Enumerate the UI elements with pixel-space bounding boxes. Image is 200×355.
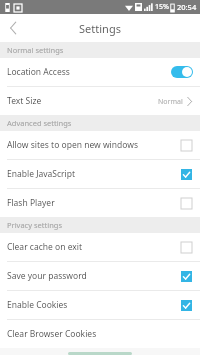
staticText: Settings (79, 21, 121, 36)
staticText: 15% (155, 2, 169, 12)
button[interactable]: Unchecked (179, 138, 193, 152)
staticText: Clear cache on exit (7, 241, 179, 253)
staticText: Text Size (7, 95, 158, 107)
staticText: Save your password (7, 270, 179, 282)
staticText: Privacy settings (7, 220, 62, 230)
staticText: Clear Browser Cookies (7, 328, 193, 340)
staticText: 20:54 (177, 2, 197, 12)
button[interactable]: Save your password (0, 262, 200, 290)
button[interactable]: Checked (179, 298, 193, 312)
button[interactable]: Checked (179, 167, 193, 181)
button[interactable]: Back (0, 15, 26, 41)
staticText: Enable JavaScript (7, 168, 179, 180)
button[interactable]: Enable Cookies (0, 291, 200, 319)
button[interactable]: Allow sites to open new windows (0, 131, 200, 159)
button[interactable]: Checked (179, 269, 193, 283)
button[interactable]: Clear cache on exit (0, 233, 200, 261)
staticText: Advanced settings (7, 118, 72, 128)
button[interactable]: Enable JavaScript (0, 160, 200, 188)
staticText: Normal (158, 97, 183, 107)
button[interactable]: Unchecked (179, 196, 193, 210)
staticText: Flash Player (7, 197, 179, 209)
staticText: Enable Cookies (7, 299, 179, 311)
button[interactable]: Unchecked (179, 240, 193, 254)
button[interactable]: Location Access toggle (171, 66, 193, 78)
button[interactable] (68, 352, 132, 355)
staticText: Location Access (7, 66, 171, 78)
button[interactable]: Text Size (0, 87, 200, 115)
button[interactable]: Clear Browser Cookies (0, 320, 200, 348)
staticText: Normal settings (7, 45, 64, 55)
button[interactable]: Flash Player (0, 189, 200, 217)
staticText: Allow sites to open new windows (7, 139, 179, 151)
button[interactable]: Location Access (0, 58, 200, 86)
